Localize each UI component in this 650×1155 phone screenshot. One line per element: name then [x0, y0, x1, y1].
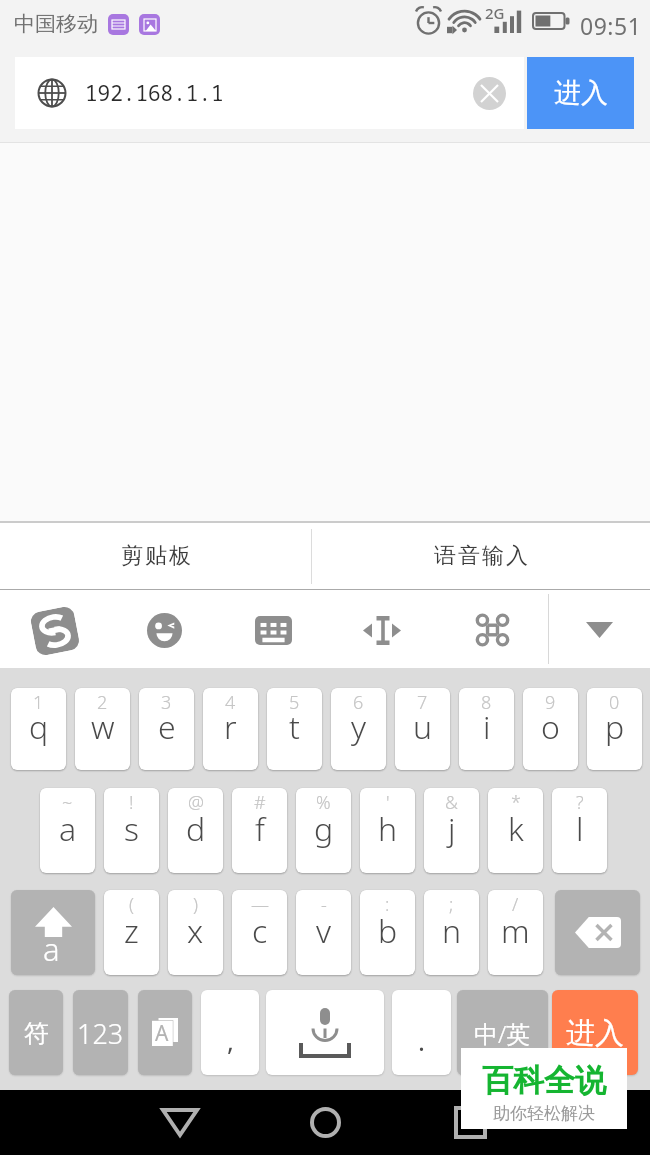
staticText: 进入 — [566, 1015, 624, 1052]
button[interactable]: ~ — [40, 788, 95, 873]
button[interactable]: * — [488, 788, 543, 873]
button[interactable]: 进入 — [527, 57, 634, 129]
staticText: z — [124, 909, 139, 953]
staticText: 进入 — [554, 76, 608, 110]
staticText: 助你轻松解决 — [493, 1103, 595, 1124]
button[interactable]: 0 — [587, 688, 642, 770]
button[interactable]: 4 — [203, 688, 258, 770]
staticText: p — [605, 705, 625, 749]
staticText: w — [91, 705, 115, 749]
button[interactable]: Home — [295, 1092, 355, 1152]
button[interactable]: Hide keyboard — [577, 608, 621, 652]
staticText: q — [29, 705, 49, 749]
button[interactable]: — — [232, 890, 287, 975]
button[interactable]: ) — [168, 890, 223, 975]
staticText: a — [59, 807, 77, 851]
staticText: 1 — [33, 690, 44, 715]
staticText: 剪贴板 — [120, 542, 192, 570]
staticText: ~ — [62, 790, 73, 815]
button[interactable]: 123 — [73, 990, 128, 1075]
button[interactable]: 中/英 — [457, 990, 548, 1075]
button[interactable]: @ — [168, 788, 223, 873]
button[interactable]: # — [232, 788, 287, 873]
staticText: 3 — [161, 690, 172, 715]
staticText: n — [442, 909, 462, 953]
staticText: ) — [193, 892, 198, 917]
staticText: g — [314, 807, 334, 851]
staticText: a — [43, 928, 60, 970]
button[interactable]: ; — [424, 890, 479, 975]
button[interactable]: 进入 — [552, 990, 638, 1075]
staticText: b — [378, 909, 398, 953]
button[interactable]: 8 — [459, 688, 514, 770]
button[interactable]: Settings — [470, 608, 514, 652]
button[interactable]: 192.168.1.1 — [15, 57, 524, 129]
staticText: 6 — [353, 690, 364, 715]
button[interactable]: 7 — [395, 688, 450, 770]
staticText: i — [483, 705, 491, 749]
button[interactable]: 6 — [331, 688, 386, 770]
button[interactable]: ? — [552, 788, 607, 873]
staticText: 192.168.1.1 — [85, 79, 224, 108]
button[interactable]: Backspace — [555, 890, 640, 975]
button[interactable]: 语音输入 — [312, 523, 650, 589]
staticText: : — [385, 892, 390, 917]
button[interactable]: 3 — [139, 688, 194, 770]
button[interactable]: 剪贴板 — [0, 523, 311, 589]
staticText: x — [187, 909, 204, 953]
staticText: 中国移动 — [14, 11, 98, 37]
button[interactable]: Emoji — [142, 608, 186, 652]
button[interactable]: Clear — [473, 77, 506, 110]
button[interactable]: . — [392, 990, 451, 1075]
staticText: l — [576, 807, 584, 851]
staticText: ' — [386, 790, 390, 815]
staticText: e — [158, 705, 176, 749]
button[interactable]: Shift — [11, 890, 95, 975]
staticText: d — [186, 807, 206, 851]
staticText: f — [255, 807, 265, 851]
button[interactable]: ! — [104, 788, 159, 873]
button[interactable]: Switch language — [138, 990, 192, 1075]
button[interactable]: / — [488, 890, 543, 975]
button[interactable]: 9 — [523, 688, 578, 770]
button[interactable]: , — [201, 990, 259, 1075]
staticText: 2 — [97, 690, 108, 715]
staticText: / — [512, 892, 519, 917]
button[interactable]: Recent apps — [440, 1092, 500, 1152]
button[interactable]: Sogou input — [30, 606, 79, 655]
staticText: 5 — [289, 690, 300, 715]
staticText: c — [252, 909, 268, 953]
button[interactable]: : — [360, 890, 415, 975]
button[interactable]: % — [296, 788, 351, 873]
staticText: 符 — [24, 1018, 49, 1049]
staticText: m — [501, 909, 530, 953]
staticText: % — [316, 790, 331, 815]
staticText: 2G — [485, 3, 505, 23]
staticText: v — [316, 909, 332, 953]
button[interactable]: ' — [360, 788, 415, 873]
staticText: ! — [129, 790, 134, 815]
staticText: r — [224, 705, 237, 749]
staticText: o — [541, 705, 560, 749]
button[interactable]: & — [424, 788, 479, 873]
button[interactable]: 符 — [9, 990, 63, 1075]
staticText: . — [418, 1023, 425, 1058]
button[interactable]: Back — [150, 1092, 210, 1152]
staticText: k — [508, 807, 524, 851]
button[interactable]: Keyboard layout — [251, 608, 295, 652]
button[interactable]: 2 — [75, 688, 130, 770]
staticText: 中/英 — [474, 1017, 531, 1050]
staticText: y — [351, 705, 367, 749]
button[interactable]: Move cursor — [360, 608, 404, 652]
button[interactable]: 1 — [11, 688, 66, 770]
button[interactable]: 5 — [267, 688, 322, 770]
staticText: 语音输入 — [433, 542, 529, 570]
button[interactable]: ( — [104, 890, 159, 975]
button[interactable]: - — [296, 890, 351, 975]
staticText: t — [289, 705, 300, 749]
staticText: 123 — [77, 1015, 124, 1052]
staticText: 8 — [481, 690, 492, 715]
staticText: j — [448, 807, 456, 851]
staticText: 4 — [225, 690, 236, 715]
button[interactable]: Space — [266, 990, 384, 1075]
